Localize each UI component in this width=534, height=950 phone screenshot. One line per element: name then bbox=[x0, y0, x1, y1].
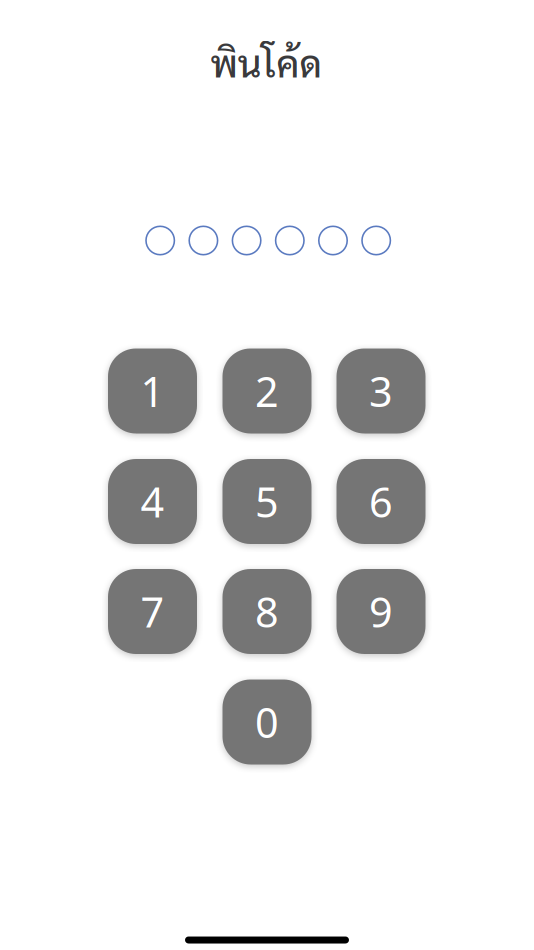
staticText: 1 bbox=[140, 364, 164, 418]
button[interactable]: 8 bbox=[222, 569, 311, 654]
staticText: 5 bbox=[255, 474, 279, 529]
button[interactable]: 1 bbox=[108, 348, 197, 433]
staticText: 9 bbox=[369, 584, 393, 639]
button[interactable]: 4 bbox=[108, 459, 197, 544]
staticText: 3 bbox=[369, 364, 393, 418]
button[interactable]: 3 bbox=[336, 348, 425, 433]
button[interactable]: 7 bbox=[108, 569, 197, 654]
button[interactable]: 0 bbox=[222, 679, 311, 764]
button[interactable]: 2 bbox=[222, 348, 311, 433]
staticText: 8 bbox=[255, 584, 279, 639]
staticText: พินโค้ด bbox=[210, 38, 321, 86]
staticText: 2 bbox=[255, 364, 279, 418]
staticText: 7 bbox=[140, 584, 164, 639]
staticText: 6 bbox=[369, 474, 393, 529]
button[interactable]: 6 bbox=[336, 459, 425, 544]
staticText: 0 bbox=[255, 695, 279, 749]
button[interactable]: 5 bbox=[222, 459, 311, 544]
button[interactable]: 9 bbox=[336, 569, 425, 654]
staticText: 4 bbox=[140, 474, 164, 529]
